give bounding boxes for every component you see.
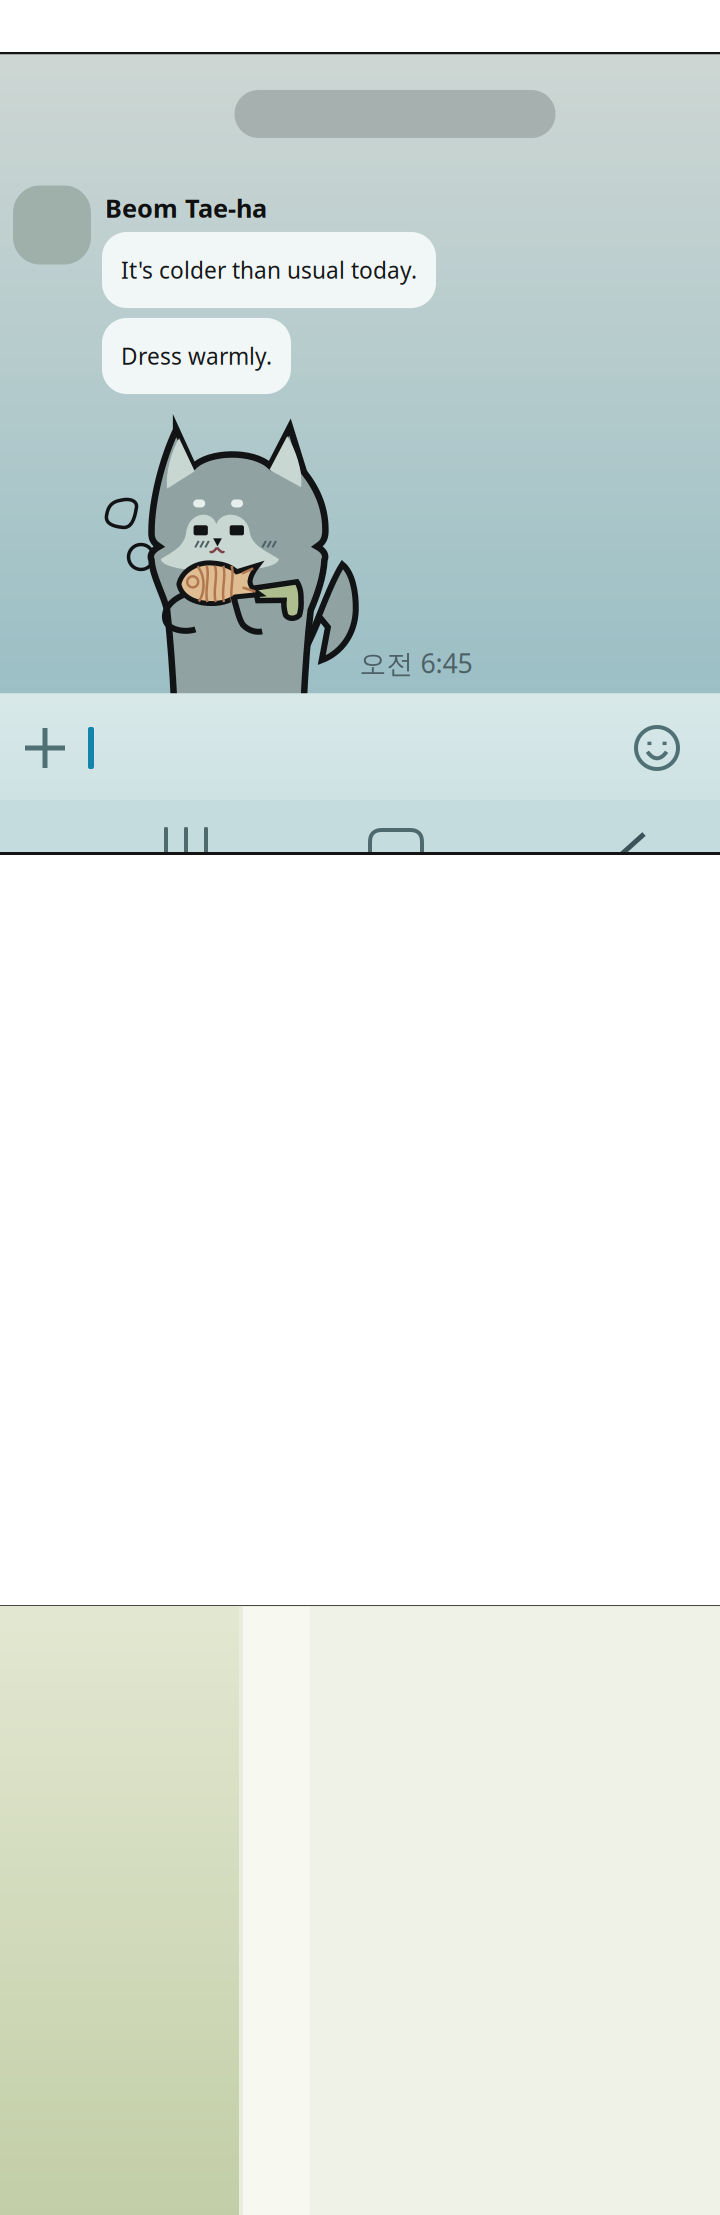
staticText: 오전 6:45 xyxy=(359,645,472,681)
button[interactable]: Emoji xyxy=(623,714,691,782)
staticText: Beom Tae-ha xyxy=(105,191,267,225)
staticText: Dress warmly. xyxy=(121,341,272,371)
button[interactable]: Attach xyxy=(7,710,83,786)
staticText: It's colder than usual today. xyxy=(121,255,417,285)
